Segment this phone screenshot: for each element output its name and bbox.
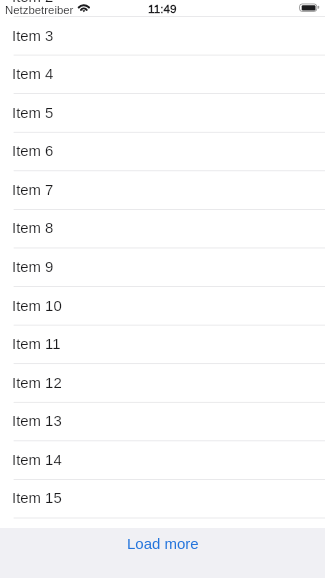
button[interactable]: Item 5 (0, 94, 325, 133)
staticText: Item 3 (12, 28, 54, 45)
staticText: Item 6 (12, 143, 54, 160)
staticText: Item 11 (12, 336, 61, 353)
staticText: Item 8 (12, 220, 54, 237)
button[interactable]: Item 4 (0, 55, 325, 94)
button[interactable]: Item 9 (0, 248, 325, 287)
staticText: Item 13 (12, 413, 62, 430)
other: Battery full (299, 3, 320, 12)
staticText: 11:49 (148, 2, 177, 15)
staticText: Item 2 (12, 0, 54, 6)
button[interactable]: Item 12 (0, 364, 325, 403)
button[interactable]: Item 15 (0, 479, 325, 518)
button[interactable]: Item 2 (0, 0, 325, 17)
staticText: Item 7 (12, 182, 54, 199)
staticText: Netzbetreiber (5, 4, 74, 17)
button[interactable]: Load more (0, 528, 325, 558)
staticText: Item 9 (12, 259, 54, 276)
button[interactable]: Item 14 (0, 441, 325, 480)
button[interactable]: Item 10 (0, 287, 325, 326)
staticText: Item 5 (12, 105, 54, 122)
button[interactable]: Item 11 (0, 325, 325, 364)
staticText: Item 4 (12, 66, 54, 83)
button[interactable]: Item 6 (0, 132, 325, 171)
other: Wi-Fi signal (76, 2, 93, 14)
staticText: Load more (127, 535, 199, 552)
button[interactable]: Item 3 (0, 17, 325, 56)
staticText: Item 10 (12, 298, 62, 315)
button[interactable]: Item 7 (0, 171, 325, 210)
button[interactable]: Item 8 (0, 209, 325, 248)
staticText: Item 15 (12, 490, 62, 507)
button[interactable]: Item 13 (0, 402, 325, 441)
staticText: Item 14 (12, 452, 62, 469)
staticText: Item 12 (12, 375, 62, 392)
